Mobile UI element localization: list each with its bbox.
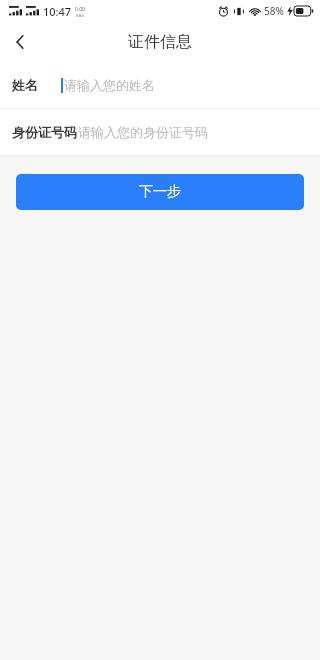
staticText: 58% [264,4,284,18]
staticText: 下一步 [139,183,181,201]
staticText: 请输入您的姓名 [64,77,155,93]
staticText: 姓名 [12,77,38,93]
staticText: KB/s [76,13,85,18]
staticText: 0.00 [75,6,85,13]
staticText: 10:47 [43,4,72,19]
button[interactable]: 姓名 [0,62,320,108]
staticText: 请输入您的身份证号码 [78,124,208,140]
button[interactable]: Back [0,22,40,62]
staticText: 身份证号码 [12,124,77,140]
button[interactable]: 身份证号码 [0,109,320,155]
button[interactable]: 下一步 [16,174,304,210]
staticText: 证件信息 [128,32,192,52]
